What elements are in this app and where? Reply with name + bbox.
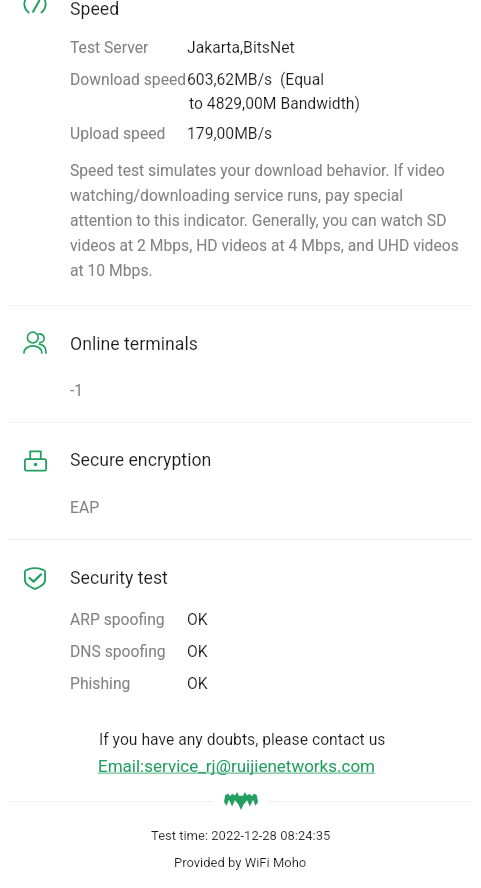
- staticText: Secure encryption: [70, 450, 212, 471]
- staticText: Phishing: [70, 674, 131, 692]
- staticText: ARP spoofing: [70, 610, 165, 628]
- button[interactable]: Email:service_rj@ruijienetworks.com: [98, 756, 375, 776]
- staticText: EAP: [70, 498, 100, 516]
- staticText: Email:service_rj@ruijienetworks.com: [98, 756, 375, 776]
- staticText: Security test: [70, 568, 168, 589]
- other: Secure encryption: [24, 449, 47, 472]
- staticText: 603,62MB/s: [187, 70, 273, 88]
- staticText: to 4829,00M Bandwidth): [189, 94, 360, 112]
- staticText: Download speed: [70, 70, 187, 88]
- other: Online terminals: [24, 332, 46, 353]
- other: Security test: [23, 566, 47, 590]
- staticText: If you have any doubts, please contact u…: [99, 730, 386, 748]
- staticText: Speed: [70, 0, 120, 20]
- staticText: Upload speed: [70, 124, 166, 142]
- staticText: Speed test simulates your download behav…: [70, 161, 464, 280]
- staticText: Jakarta,BitsNet: [187, 38, 295, 56]
- staticText: DNS spoofing: [70, 642, 166, 660]
- staticText: OK: [187, 610, 208, 628]
- other: Speed: [22, 0, 48, 17]
- staticText: (Equal: [280, 70, 325, 88]
- staticText: Test time: 2022-12-28 08:24:35: [151, 828, 331, 843]
- staticText: OK: [187, 674, 208, 692]
- staticText: Online terminals: [70, 334, 198, 355]
- staticText: Test Server: [70, 38, 149, 56]
- staticText: 179,00MB/s: [187, 124, 273, 142]
- staticText: Provided by WiFi Moho: [174, 855, 307, 870]
- staticText: -1: [70, 381, 84, 399]
- staticText: OK: [187, 642, 208, 660]
